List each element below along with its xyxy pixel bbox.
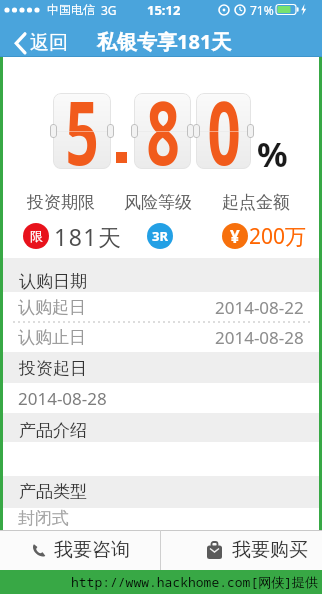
staticText: 我要咨询 [54,538,130,562]
staticText: 2014-08-28 [215,326,304,349]
button[interactable]: 返回 [14,31,68,55]
staticText: 我要购买 [232,538,308,562]
staticText: 3R [152,227,168,245]
staticText: 中国电信 [47,2,95,17]
staticText: 2014-08-28 [18,387,107,410]
staticText: 认购起日 [18,297,86,318]
staticText: 产品类型 [19,481,87,502]
staticText: 181天 [54,221,123,252]
staticText: 私银专享181天 [97,28,232,55]
staticText: http://www.hackhome.com[网侠]提供 [71,573,319,591]
staticText: 认购止日 [18,327,86,348]
staticText: 产品介绍 [19,420,87,441]
staticText: 起点金额 [222,192,290,213]
staticText: 5 [65,71,99,191]
staticText: 3G [101,2,117,18]
staticText: 投资起日 [19,358,87,379]
staticText: 2014-08-22 [215,296,304,319]
button[interactable]: 我要咨询 [0,530,161,570]
staticText: ¥ [230,225,240,248]
staticText: 15:12 [147,1,181,19]
staticText: 8 [146,71,180,191]
button[interactable]: 认购止日 [3,322,319,352]
staticText: 0 [207,71,241,191]
staticText: 封闭式 [18,508,69,529]
staticText: 71% [250,2,274,18]
staticText: 200万 [249,222,307,251]
button[interactable]: 我要购买 [180,530,322,570]
staticText: 投资期限 [27,192,95,213]
staticText: 限 [30,228,43,244]
staticText: 返回 [30,31,68,55]
staticText: % [257,131,288,177]
staticText: 认购日期 [19,271,87,292]
staticText: 风险等级 [124,192,192,213]
button[interactable]: 认购起日 [3,292,319,322]
